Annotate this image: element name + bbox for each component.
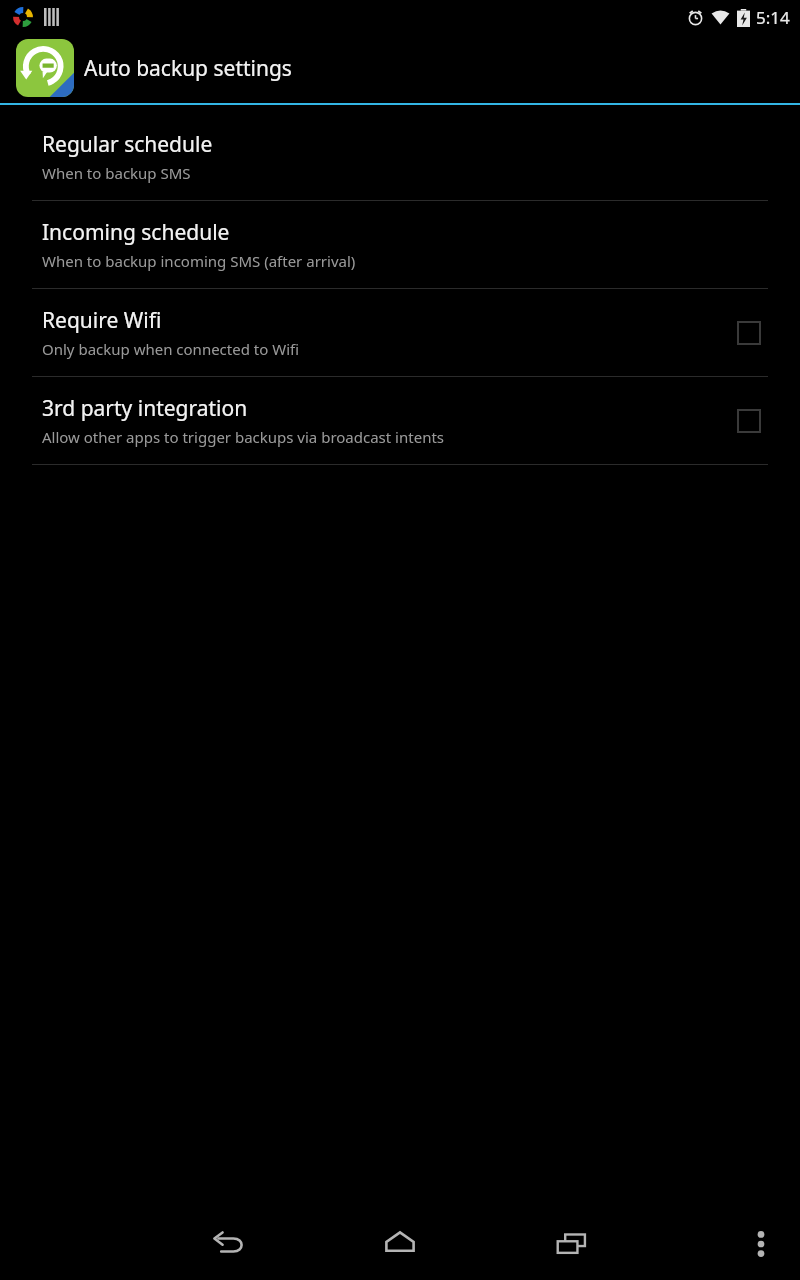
button[interactable]: Home xyxy=(362,1208,438,1280)
staticText: When to backup incoming SMS (after arriv… xyxy=(42,251,356,271)
button[interactable]: Auto backup settings xyxy=(0,34,800,102)
staticText: Require Wifi xyxy=(42,306,162,335)
staticText: Incoming schedule xyxy=(42,218,230,247)
button[interactable]: Require Wifi xyxy=(0,289,800,376)
button[interactable]: Require Wifi xyxy=(726,310,772,356)
button[interactable]: Recent apps xyxy=(534,1208,610,1280)
staticText: Auto backup settings xyxy=(84,54,292,83)
button[interactable]: Incoming schedule xyxy=(0,201,800,288)
button[interactable]: 3rd party integration xyxy=(0,377,800,464)
button[interactable]: Regular schedule xyxy=(0,113,800,200)
staticText: 3rd party integration xyxy=(42,394,248,423)
button[interactable]: More options xyxy=(732,1215,790,1273)
staticText: 5:14 xyxy=(756,6,790,29)
staticText: Allow other apps to trigger backups via … xyxy=(42,427,445,447)
button[interactable]: Back xyxy=(190,1208,266,1280)
staticText: Only backup when connected to Wifi xyxy=(42,339,300,359)
staticText: Regular schedule xyxy=(42,130,213,159)
staticText: When to backup SMS xyxy=(42,163,191,183)
button[interactable]: 3rd party integration xyxy=(726,398,772,444)
